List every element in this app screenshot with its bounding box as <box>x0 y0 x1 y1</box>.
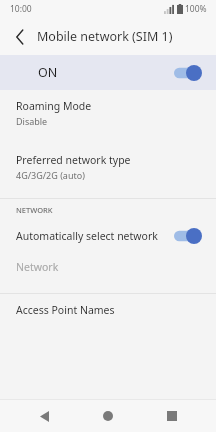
staticText: Roaming Mode <box>16 99 92 113</box>
button[interactable]: Back <box>24 400 64 432</box>
button[interactable]: Access Point Names <box>0 294 216 326</box>
button[interactable]: Home <box>88 400 128 432</box>
button[interactable]: Back <box>8 25 32 49</box>
staticText: Network <box>16 260 59 274</box>
button[interactable]: Roaming Mode <box>0 96 216 130</box>
button[interactable]: Preferred network type <box>0 150 216 184</box>
staticText: ON <box>38 64 58 81</box>
button[interactable]: Recent apps <box>152 400 192 432</box>
button[interactable]: ON <box>0 55 216 90</box>
staticText: Mobile network (SIM 1) <box>37 28 173 45</box>
button[interactable]: Network <box>0 251 216 283</box>
staticText: 10:00 <box>10 3 32 15</box>
staticText: 100% <box>185 3 207 15</box>
staticText: Automatically select network <box>16 229 158 243</box>
staticText: Disable <box>16 115 48 127</box>
staticText: Access Point Names <box>16 303 115 317</box>
staticText: 4G/3G/2G (auto) <box>16 169 85 181</box>
button[interactable]: Automatically select network <box>0 221 216 251</box>
staticText: NETWORK <box>16 205 53 215</box>
staticText: Preferred network type <box>16 153 131 167</box>
